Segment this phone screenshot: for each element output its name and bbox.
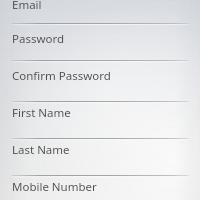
button[interactable]: First Name field — [12, 105, 182, 119]
button[interactable]: Password field — [12, 31, 182, 45]
button[interactable]: Mobile Number field — [12, 179, 182, 193]
staticText: Mobile Number — [12, 179, 97, 193]
staticText: Email — [12, 0, 42, 11]
button[interactable]: Last Name field — [12, 142, 182, 156]
staticText: Last Name — [12, 142, 70, 156]
button[interactable]: Email field — [12, 0, 182, 11]
button[interactable]: Confirm Password field — [12, 68, 182, 82]
staticText: Password — [12, 31, 65, 45]
staticText: First Name — [12, 105, 71, 119]
staticText: Confirm Password — [12, 68, 111, 82]
